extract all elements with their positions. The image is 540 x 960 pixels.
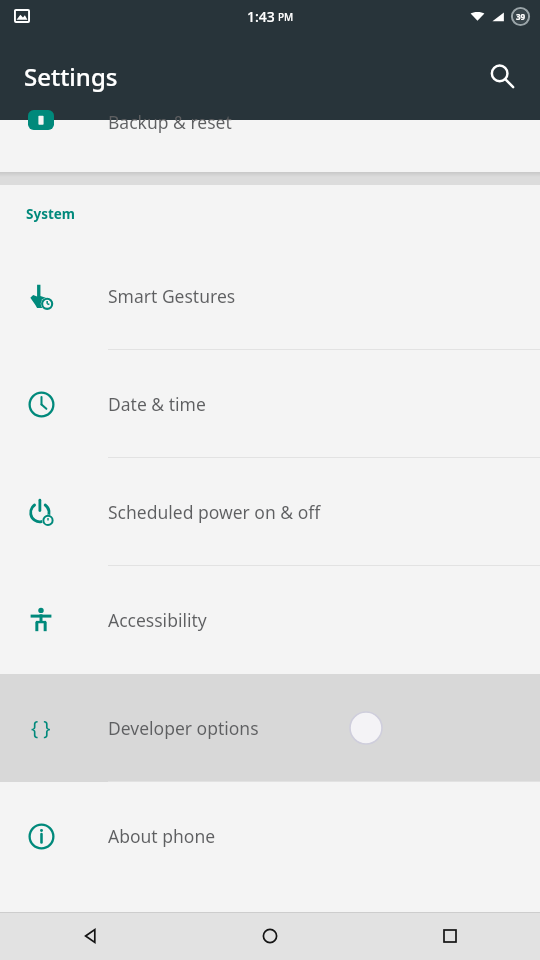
staticText: Smart Gestures (108, 284, 236, 308)
button[interactable]: Date & time (0, 350, 540, 458)
button[interactable]: About phone (0, 782, 540, 890)
button[interactable]: Smart Gestures (0, 242, 540, 350)
staticText: Accessibility (108, 608, 207, 632)
button[interactable]: { } (0, 674, 540, 782)
staticText: Date & time (108, 392, 206, 416)
staticText: Developer options (108, 716, 259, 740)
button[interactable]: Back (0, 912, 180, 960)
staticText: Scheduled power on & off (108, 500, 321, 524)
button[interactable]: Home (180, 912, 360, 960)
staticText: { } (31, 715, 51, 741)
staticText: 1:43 (247, 7, 275, 26)
staticText: Backup & reset (108, 110, 232, 134)
button[interactable]: Accessibility (0, 566, 540, 674)
button[interactable]: Recent apps (360, 912, 540, 960)
button[interactable]: Search (478, 52, 526, 100)
button[interactable]: Scheduled power on & off (0, 458, 540, 566)
button[interactable] (0, 120, 540, 172)
staticText: System (26, 205, 76, 223)
staticText: 39 (516, 11, 526, 22)
staticText: PM (278, 10, 294, 24)
staticText: About phone (108, 824, 216, 848)
staticText: Settings (24, 60, 118, 93)
